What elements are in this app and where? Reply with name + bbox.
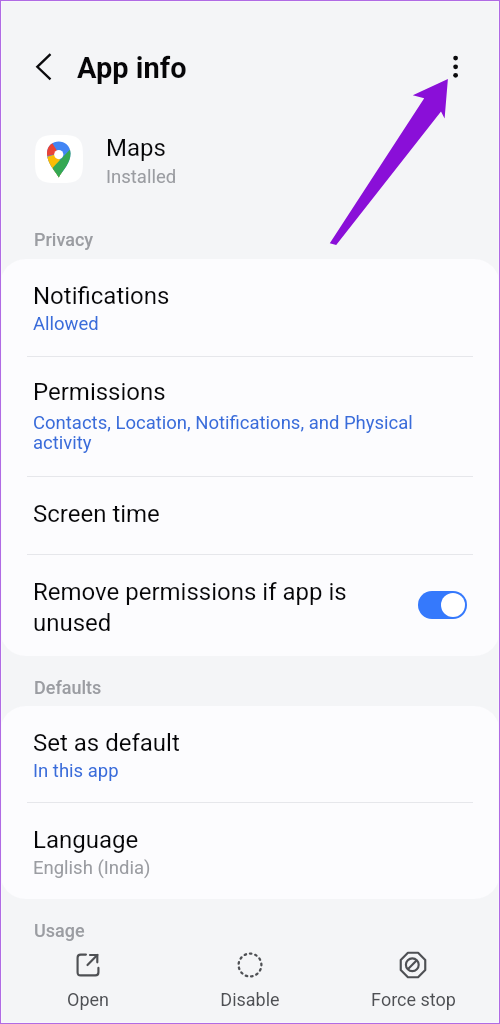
staticText: Force stop (371, 989, 456, 1010)
staticText: Notifications (33, 282, 170, 310)
button[interactable]: Notifications (0, 259, 500, 356)
staticText: Permissions (33, 378, 166, 406)
button[interactable]: More options (421, 45, 469, 93)
staticText: Set as default (33, 729, 180, 757)
staticText: Language (33, 826, 139, 854)
button[interactable]: Remove permissions if app is unused (418, 591, 467, 619)
staticText: Screen time (33, 500, 160, 528)
button[interactable]: Permissions (0, 357, 500, 476)
staticText: Maps (106, 134, 166, 162)
staticText: Usage (34, 920, 85, 941)
staticText: Open (67, 989, 109, 1010)
button[interactable]: Language (0, 803, 500, 899)
staticText: English (India) (33, 857, 151, 879)
staticText: Allowed (33, 313, 99, 335)
button[interactable]: Screen time (0, 477, 500, 554)
button[interactable]: Open app (33, 940, 143, 1018)
staticText: Contacts, Location, Notifications, and P… (33, 412, 472, 454)
button[interactable]: Set as default (0, 706, 500, 802)
button[interactable]: Remove permissions if app is unused (0, 555, 500, 656)
staticText: In this app (33, 760, 119, 782)
button[interactable]: Disable app (195, 940, 305, 1018)
staticText: Remove permissions if app is unused (33, 578, 358, 637)
button[interactable]: Navigate up (20, 43, 68, 91)
button[interactable]: Force stop app (358, 940, 468, 1018)
staticText: App info (77, 51, 187, 85)
staticText: Defaults (34, 677, 102, 698)
staticText: Privacy (34, 229, 94, 250)
staticText: Installed (106, 166, 177, 188)
staticText: Disable (220, 989, 280, 1010)
